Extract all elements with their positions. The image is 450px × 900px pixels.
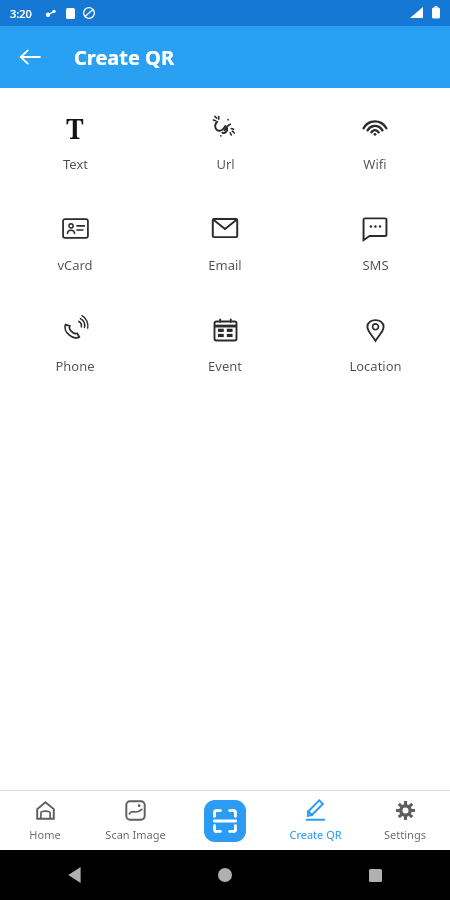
button[interactable]: T (0, 106, 150, 177)
button[interactable]: Home (165, 850, 285, 900)
staticText: Url (216, 155, 235, 173)
staticText: Scan Image (105, 827, 166, 842)
staticText: Phone (55, 357, 95, 375)
staticText: 3:20 (10, 6, 32, 21)
staticText: Home (29, 827, 61, 842)
staticText: T (66, 110, 84, 144)
button[interactable]: Phone (0, 308, 150, 379)
staticText: Create QR (289, 827, 342, 842)
button[interactable]: Location (300, 308, 450, 379)
staticText: SMS (362, 256, 389, 274)
button[interactable]: Back (0, 850, 150, 900)
button[interactable]: Recent apps (300, 850, 450, 900)
button[interactable]: Home (0, 791, 90, 850)
staticText: Settings (384, 827, 426, 842)
staticText: Event (208, 357, 242, 375)
button[interactable]: Back (6, 33, 54, 81)
button[interactable]: Url (150, 106, 300, 177)
staticText: vCard (57, 256, 93, 274)
button[interactable]: Event (150, 308, 300, 379)
button[interactable]: Wifi (300, 106, 450, 177)
button[interactable]: Settings (360, 791, 450, 850)
staticText: Email (208, 256, 242, 274)
button[interactable]: vCard (0, 207, 150, 278)
button[interactable]: Email (150, 207, 300, 278)
staticText: Wifi (363, 155, 387, 173)
staticText: Create QR (74, 44, 175, 71)
button[interactable]: Scan QR code (180, 791, 270, 850)
button[interactable]: Create QR (270, 791, 360, 850)
staticText: Location (349, 357, 402, 375)
button[interactable]: SMS (300, 207, 450, 278)
button[interactable]: Scan Image (90, 791, 180, 850)
staticText: Text (63, 155, 88, 173)
